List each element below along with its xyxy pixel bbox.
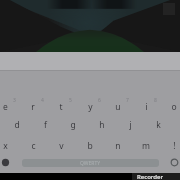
button[interactable]: Voice input: [169, 157, 180, 168]
staticText: Recorder: [137, 173, 163, 180]
staticText: g: [70, 119, 76, 131]
button[interactable]: c: [24, 137, 42, 155]
button[interactable]: r: [24, 98, 42, 116]
staticText: 8: [154, 97, 157, 104]
button[interactable]: d: [8, 116, 26, 134]
button[interactable]: i: [137, 98, 155, 116]
staticText: 4: [41, 97, 44, 104]
button[interactable]: v: [52, 137, 70, 155]
staticText: j: [129, 119, 132, 131]
staticText: m: [142, 140, 150, 152]
button[interactable]: n: [109, 137, 127, 155]
staticText: h: [99, 119, 105, 131]
staticText: 5: [69, 97, 72, 104]
staticText: t: [59, 101, 63, 113]
staticText: o: [171, 101, 177, 113]
button[interactable]: b: [81, 137, 99, 155]
button[interactable]: k: [149, 116, 167, 134]
staticText: i: [145, 101, 148, 113]
button[interactable]: g: [64, 116, 82, 134]
staticText: r: [31, 101, 35, 113]
staticText: b: [87, 140, 93, 152]
staticText: QWERTY: [80, 160, 101, 167]
button[interactable]: Recorder: [132, 173, 180, 180]
button[interactable]: m: [137, 137, 155, 155]
staticText: f: [44, 119, 47, 131]
staticText: v: [59, 140, 64, 152]
button[interactable]: e: [0, 98, 14, 116]
button[interactable]: t: [52, 98, 70, 116]
button[interactable]: o: [165, 98, 180, 116]
button[interactable]: f: [36, 116, 54, 134]
button[interactable]: j: [121, 116, 139, 134]
staticText: c: [31, 140, 36, 152]
staticText: e: [3, 101, 8, 113]
staticText: !: [173, 140, 176, 152]
staticText: n: [115, 140, 121, 152]
staticText: k: [156, 119, 161, 131]
button[interactable]: x: [0, 137, 14, 155]
staticText: d: [14, 119, 20, 131]
staticText: u: [115, 101, 121, 113]
button[interactable]: QWERTY: [22, 159, 159, 167]
button[interactable]: Emoji: [0, 157, 11, 168]
staticText: 7: [126, 97, 129, 104]
button[interactable]: u: [109, 98, 127, 116]
staticText: 3: [13, 97, 16, 104]
staticText: x: [3, 140, 8, 152]
button[interactable]: !: [165, 137, 180, 155]
staticText: y: [88, 101, 93, 113]
button[interactable]: y: [81, 98, 99, 116]
staticText: 6: [98, 97, 101, 104]
button[interactable]: h: [93, 116, 111, 134]
